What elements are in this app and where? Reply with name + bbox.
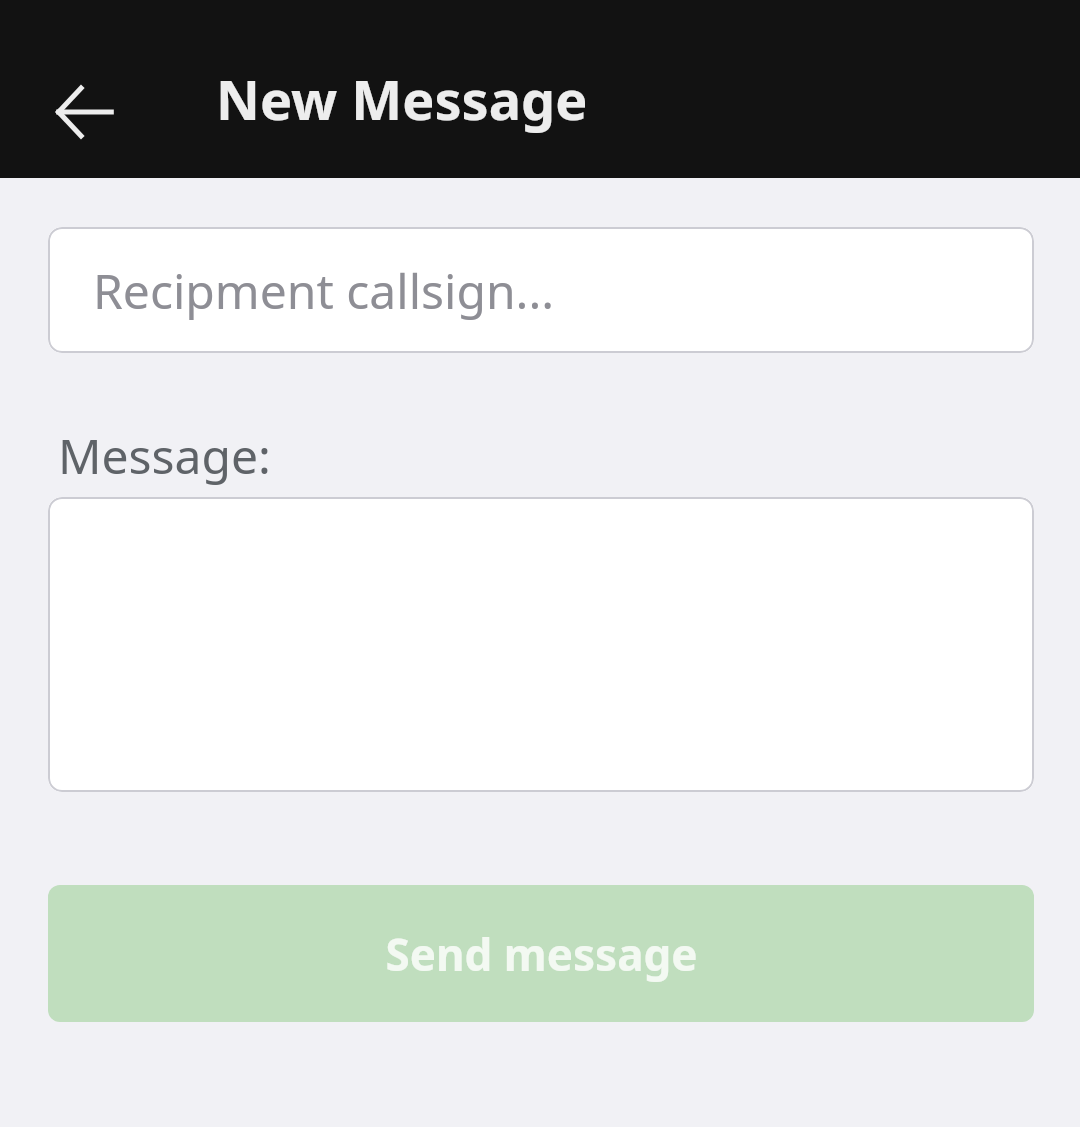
staticText: Recipment callsign... [93,258,555,323]
button[interactable]: Recipment callsign... [48,227,1034,353]
staticText: Message: [58,423,271,488]
button[interactable]: Back [30,67,140,157]
button[interactable]: Send message [48,885,1034,1022]
staticText: Send message [385,924,698,984]
button[interactable] [48,497,1034,792]
staticText: New Message [216,62,588,136]
